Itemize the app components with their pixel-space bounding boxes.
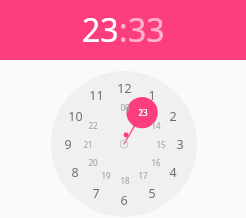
- button[interactable]: 3: [170, 134, 190, 154]
- button[interactable]: 17: [135, 168, 150, 183]
- staticText: 8: [71, 164, 79, 181]
- staticText: 15: [156, 139, 166, 150]
- button[interactable]: 20: [85, 155, 100, 170]
- button[interactable]: 19: [98, 168, 113, 183]
- button[interactable]: 6: [114, 190, 134, 210]
- button[interactable]: 00: [117, 100, 132, 115]
- button[interactable]: 13: [135, 105, 150, 120]
- staticText: 18: [120, 175, 130, 186]
- staticText: 4: [169, 164, 177, 181]
- button[interactable]: 23: [135, 105, 150, 120]
- staticText: 10: [68, 108, 83, 125]
- staticText: 16: [151, 157, 161, 168]
- button[interactable]: 1: [142, 85, 162, 105]
- staticText: 23: [138, 107, 148, 118]
- button[interactable]: 33: [128, 8, 165, 52]
- staticText: 17: [138, 170, 148, 181]
- button[interactable]: 16: [148, 155, 163, 170]
- staticText: 12: [117, 80, 132, 97]
- button[interactable]: 10: [65, 106, 85, 126]
- staticText: 20: [88, 157, 98, 168]
- button[interactable]: 7: [86, 183, 106, 203]
- staticText: 2: [169, 108, 177, 125]
- button[interactable]: 2: [163, 106, 183, 126]
- button[interactable]: 5: [142, 183, 162, 203]
- button[interactable]: 18: [117, 173, 132, 188]
- button[interactable]: 11: [86, 85, 106, 105]
- button[interactable]: 14: [148, 118, 163, 133]
- staticText: 11: [89, 87, 104, 104]
- button[interactable]: Hour picker: [51, 71, 197, 217]
- button[interactable]: 12: [114, 78, 134, 98]
- staticText: 1: [148, 87, 156, 104]
- button[interactable]: 15: [153, 137, 168, 152]
- button[interactable]: 21: [80, 137, 95, 152]
- staticText: 22: [88, 120, 98, 131]
- staticText: 7: [92, 185, 100, 202]
- staticText: 9: [64, 136, 72, 153]
- button[interactable]: 8: [65, 162, 85, 182]
- staticText: :: [119, 8, 128, 52]
- staticText: 23: [82, 8, 119, 52]
- staticText: 3: [176, 136, 184, 153]
- button[interactable]: 22: [85, 118, 100, 133]
- staticText: 6: [120, 192, 128, 209]
- staticText: 14: [151, 120, 161, 131]
- staticText: 19: [101, 170, 111, 181]
- staticText: 21: [83, 139, 93, 150]
- staticText: 00: [120, 102, 130, 113]
- button[interactable]: 23: [82, 8, 119, 52]
- staticText: 13: [138, 107, 148, 118]
- staticText: 5: [148, 185, 156, 202]
- staticText: 33: [128, 8, 165, 52]
- button[interactable]: 4: [163, 162, 183, 182]
- button[interactable]: 9: [58, 134, 78, 154]
